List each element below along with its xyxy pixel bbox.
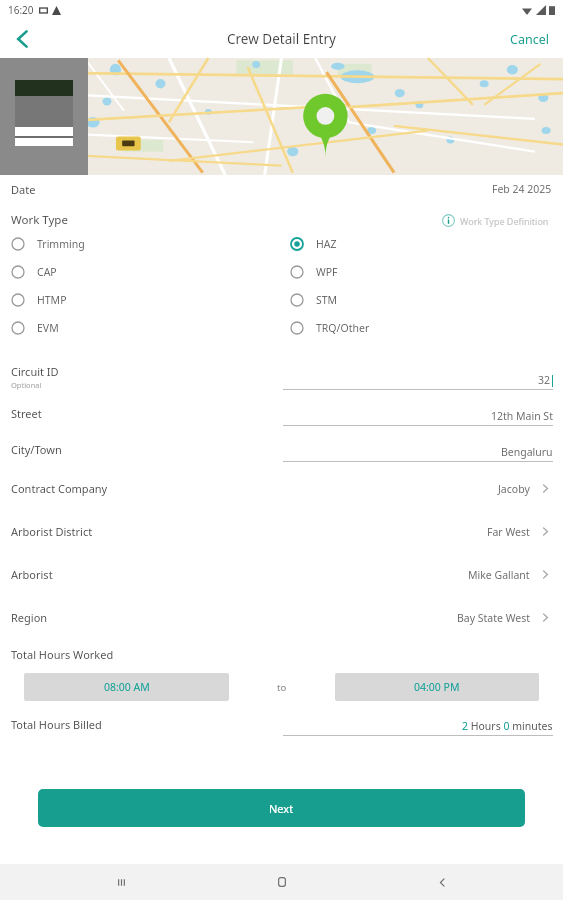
staticText: Trimming	[37, 237, 85, 251]
button[interactable]: Recent apps	[81, 864, 161, 900]
staticText: Far West	[487, 525, 530, 539]
staticText: Bengaluru	[501, 445, 553, 459]
button[interactable]: CAP	[11, 265, 281, 279]
staticText: Work Type Definition	[460, 215, 549, 227]
staticText: 16:20	[8, 3, 34, 17]
staticText: City/Town	[11, 442, 62, 457]
button[interactable]: HAZ	[290, 237, 563, 251]
staticText: Mike Gallant	[468, 568, 530, 582]
staticText: Next	[269, 801, 294, 816]
button[interactable]: Home	[242, 864, 322, 900]
staticText: Arborist District	[11, 524, 93, 539]
button[interactable]: WPF	[290, 265, 563, 279]
button[interactable]: Street	[0, 395, 563, 431]
button[interactable]: 08:00 AM	[24, 673, 229, 701]
staticText: Region	[11, 610, 48, 625]
staticText: 04:00 PM	[414, 680, 460, 694]
button[interactable]: Arborist District	[0, 510, 563, 553]
button[interactable]: EVM	[11, 321, 281, 335]
button[interactable]: 04:00 PM	[335, 673, 539, 701]
button[interactable]: Next	[38, 789, 525, 827]
staticText: CAP	[37, 265, 57, 279]
button[interactable]: Circuit ID	[0, 359, 563, 395]
button[interactable]: TRQ/Other	[290, 321, 563, 335]
staticText: Bay State West	[457, 611, 530, 625]
staticText: Date	[11, 182, 36, 197]
staticText: TRQ/Other	[316, 321, 370, 335]
staticText: 08:00 AM	[104, 680, 150, 694]
staticText: Arborist	[11, 567, 53, 582]
button[interactable]: Trimming	[11, 237, 281, 251]
button[interactable]: Back	[0, 20, 46, 58]
button[interactable]: STM	[290, 293, 563, 307]
staticText: HAZ	[316, 237, 337, 251]
button[interactable]: Back	[402, 864, 482, 900]
staticText: Jacoby	[498, 482, 530, 496]
staticText: Feb 24 2025	[492, 182, 552, 196]
staticText: Street	[11, 406, 42, 421]
button[interactable]: Arborist	[0, 553, 563, 596]
button[interactable]: Photo	[0, 58, 88, 175]
staticText: Circuit ID	[11, 364, 59, 379]
staticText: Optional	[11, 380, 42, 390]
staticText: WPF	[316, 265, 338, 279]
button[interactable]: Region	[0, 596, 563, 639]
staticText: 12th Main St	[491, 409, 553, 423]
staticText: Total Hours Worked	[11, 647, 114, 662]
staticText: Crew Detail Entry	[227, 30, 336, 48]
staticText: Cancel	[510, 31, 549, 48]
staticText: to	[277, 681, 287, 694]
staticText: Total Hours Billed	[11, 717, 102, 732]
staticText: Work Type	[11, 212, 68, 228]
button[interactable]: Cancel	[496, 20, 563, 58]
button[interactable]: City/Town	[0, 431, 563, 467]
button[interactable]: HTMP	[11, 293, 281, 307]
staticText: STM	[316, 293, 338, 307]
staticText: EVM	[37, 321, 59, 335]
staticText: HTMP	[37, 293, 67, 307]
button[interactable]: Contract Company	[0, 467, 563, 510]
staticText: 32	[538, 373, 551, 387]
button[interactable]: Work Type Definition	[439, 211, 552, 230]
staticText: 2 Hours 0 minutes	[462, 719, 553, 733]
staticText: Contract Company	[11, 481, 108, 496]
